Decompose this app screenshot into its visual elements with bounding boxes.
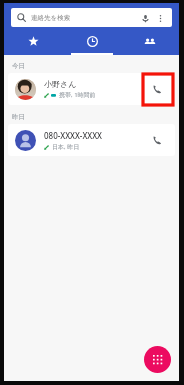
staticText: 080-XXXX-XXXX bbox=[44, 130, 102, 141]
button[interactable]: Voice search bbox=[139, 12, 151, 24]
button[interactable]: Recents bbox=[63, 31, 121, 55]
staticText: 日本, 昨日 bbox=[52, 143, 80, 151]
button[interactable]: Favorites bbox=[4, 31, 63, 55]
staticText: 小野さん bbox=[44, 79, 77, 89]
staticText: 連絡先を検索 bbox=[31, 14, 71, 22]
staticText: 今日 bbox=[12, 62, 25, 70]
button[interactable]: 小野さん bbox=[8, 73, 175, 105]
button[interactable]: 連絡先を検索 bbox=[11, 8, 172, 27]
button[interactable]: Dialpad bbox=[144, 346, 171, 373]
button[interactable]: Contacts bbox=[121, 31, 179, 55]
button[interactable]: 080-XXXX-XXXX bbox=[8, 124, 175, 156]
staticText: 昨日 bbox=[12, 113, 25, 121]
button[interactable]: More options bbox=[154, 12, 166, 24]
button[interactable]: Call back bbox=[146, 78, 168, 100]
staticText: 携帯, 1時間前 bbox=[59, 91, 96, 99]
button[interactable]: Call back bbox=[146, 129, 168, 151]
